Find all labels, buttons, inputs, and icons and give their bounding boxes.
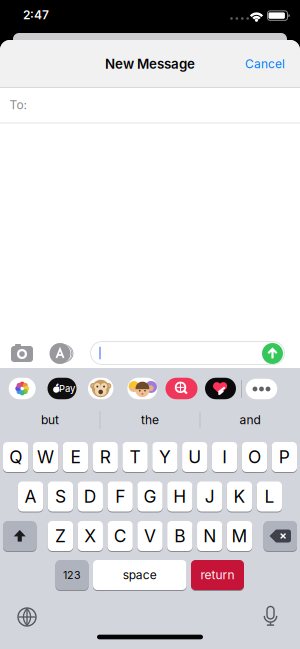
staticText: To:	[9, 98, 26, 112]
staticText: F	[115, 486, 125, 507]
button[interactable]: P	[272, 441, 297, 472]
button[interactable]: I	[212, 441, 237, 472]
staticText: P	[279, 447, 290, 467]
button[interactable]: S	[48, 481, 73, 512]
staticText: Z	[55, 526, 66, 546]
button[interactable]: H	[167, 481, 193, 512]
button[interactable]: E	[63, 441, 88, 472]
staticText: and	[239, 413, 260, 427]
staticText: O	[248, 447, 261, 467]
staticText: space	[123, 568, 157, 582]
staticText: D	[84, 486, 97, 507]
button[interactable]: K	[227, 481, 252, 512]
button[interactable]: Search images	[165, 378, 197, 399]
button[interactable]: Send	[262, 343, 283, 364]
button[interactable]: but	[5, 405, 95, 435]
staticText: J	[205, 486, 215, 507]
button[interactable]: return	[191, 559, 244, 590]
button[interactable]: Memoji Stickers	[127, 378, 157, 399]
staticText: G	[143, 486, 156, 507]
button[interactable]: F	[107, 481, 133, 512]
staticText: B	[174, 526, 185, 546]
button[interactable]: Animoji	[88, 378, 113, 399]
button[interactable]: O	[242, 441, 267, 472]
button[interactable]: D	[78, 481, 103, 512]
staticText: L	[264, 486, 274, 507]
staticText: N	[203, 526, 216, 546]
staticText: but	[41, 413, 59, 427]
staticText: the	[141, 413, 159, 427]
staticText: K	[234, 486, 246, 507]
button[interactable]: Shift	[3, 520, 36, 551]
button[interactable]: L	[257, 481, 282, 512]
button[interactable]: C	[107, 520, 133, 551]
staticText: A	[25, 486, 37, 507]
staticText: E	[70, 447, 80, 467]
staticText: Cancel	[245, 57, 285, 71]
staticText: C	[114, 526, 127, 546]
button[interactable]: V	[137, 520, 163, 551]
button[interactable]: Delete	[263, 520, 297, 551]
button[interactable]: N	[197, 520, 222, 551]
staticText: I	[222, 447, 227, 467]
button[interactable]: Photos	[9, 378, 36, 399]
button[interactable]: space	[93, 559, 186, 590]
staticText: Q	[9, 447, 22, 467]
button[interactable]: the	[105, 405, 195, 435]
staticText: R	[100, 447, 111, 467]
staticText: T	[130, 447, 141, 467]
button[interactable]: More apps	[246, 379, 277, 399]
staticText: V	[144, 526, 156, 546]
staticText: U	[188, 447, 201, 467]
staticText: return	[200, 568, 234, 582]
button[interactable]: and	[205, 405, 295, 435]
staticText: 2:47	[23, 8, 49, 22]
staticText: Y	[159, 447, 171, 467]
staticText: X	[84, 526, 96, 546]
button[interactable]: M	[227, 520, 252, 551]
button[interactable]: Cancel	[238, 49, 292, 79]
button[interactable]: U	[182, 441, 207, 472]
button[interactable]: Next keyboard	[18, 608, 36, 626]
button[interactable]: Dictation	[263, 606, 277, 625]
button[interactable]: T	[122, 441, 148, 472]
button[interactable]: A	[18, 481, 43, 512]
staticText: W	[37, 447, 54, 467]
button[interactable]: Y	[152, 441, 178, 472]
staticText: Pay	[59, 383, 75, 394]
button[interactable]: Apple Pay	[47, 378, 76, 399]
button[interactable]: Q	[3, 441, 28, 472]
button[interactable]: W	[33, 441, 58, 472]
staticText: New Message	[105, 56, 195, 72]
button[interactable]: Digital Touch	[205, 378, 236, 399]
staticText: 123	[63, 569, 81, 581]
staticText: H	[173, 486, 186, 507]
button[interactable]: Camera	[11, 344, 33, 362]
button[interactable]: 123	[55, 559, 88, 590]
button[interactable]: R	[93, 441, 118, 472]
staticText: M	[232, 526, 248, 546]
staticText: S	[55, 486, 66, 507]
button[interactable]: G	[137, 481, 163, 512]
button[interactable]: B	[167, 520, 193, 551]
button[interactable]: X	[78, 520, 103, 551]
button[interactable]: iMessage apps	[49, 343, 74, 364]
button[interactable]: J	[197, 481, 222, 512]
button[interactable]: Z	[48, 520, 73, 551]
